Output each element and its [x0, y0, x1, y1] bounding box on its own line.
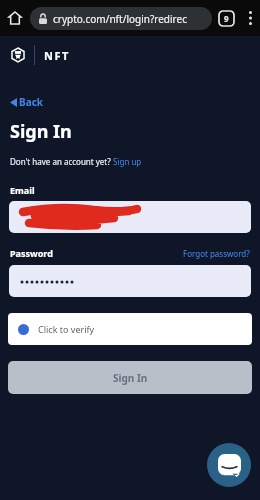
- button[interactable]: Sign up: [113, 156, 142, 167]
- staticText: crypto.com/nft/login?redirec: [53, 12, 187, 26]
- button[interactable]: [243, 8, 257, 28]
- button[interactable]: Sign In: [8, 361, 252, 394]
- staticText: Password: [10, 247, 53, 259]
- button[interactable]: [207, 443, 251, 487]
- button[interactable]: Forgot password?: [183, 248, 250, 259]
- staticText: Sign In: [113, 371, 148, 385]
- button[interactable]: crypto.com/nft/login?redirec: [30, 7, 212, 30]
- button[interactable]: [9, 265, 251, 297]
- button[interactable]: 9: [218, 10, 235, 27]
- staticText: 9: [224, 13, 229, 24]
- button[interactable]: [9, 201, 251, 233]
- staticText: Email: [10, 184, 35, 196]
- button[interactable]: Click to verify: [8, 313, 252, 345]
- button[interactable]: Back: [10, 95, 43, 109]
- staticText: Don't have an account yet?: [10, 156, 113, 167]
- button[interactable]: [0, 3, 30, 33]
- staticText: Sign In: [10, 119, 72, 144]
- staticText: Back: [19, 95, 43, 109]
- staticText: Click to verify: [38, 323, 95, 335]
- staticText: NFT: [44, 48, 70, 63]
